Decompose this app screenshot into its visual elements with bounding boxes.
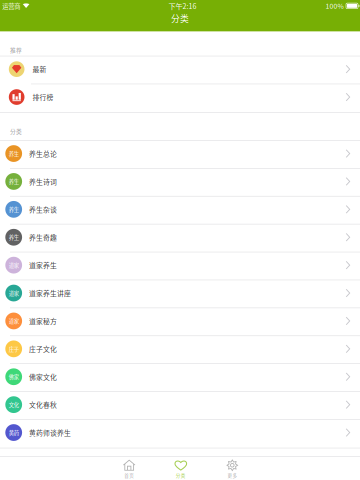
staticText: 黄药师谈养生 (29, 428, 71, 437)
staticText: 分类 (176, 472, 186, 479)
button[interactable]: 道家 (0, 280, 360, 308)
staticText: 下午2:16 (168, 1, 196, 11)
staticText: 养生杂谈 (29, 204, 57, 214)
staticText: 首页 (124, 472, 134, 479)
staticText: 养生 (9, 233, 19, 241)
button[interactable]: 养生 (0, 224, 360, 252)
button[interactable]: 首页 (103, 457, 155, 480)
staticText: 黄药 (9, 429, 19, 436)
button[interactable]: 养生 (0, 197, 360, 224)
staticText: 排行榜 (32, 92, 53, 102)
staticText: 道家 (9, 261, 19, 269)
button[interactable]: 文化 (0, 392, 360, 420)
staticText: 道家 (9, 317, 19, 325)
staticText: 庄子 (9, 345, 19, 353)
staticText: 养生总论 (29, 149, 57, 158)
button[interactable]: 分类 (155, 457, 207, 480)
staticText: 100% (325, 1, 343, 11)
staticText: 更多 (227, 472, 237, 479)
button[interactable]: 庄子 (0, 336, 360, 364)
button[interactable]: 排行榜 (0, 84, 360, 112)
button[interactable]: 更多 (207, 457, 258, 480)
staticText: 道家养生 (29, 260, 57, 270)
staticText: 运营商 (2, 1, 20, 10)
staticText: 推荐 (10, 46, 22, 54)
button[interactable]: 最新 (0, 56, 360, 84)
staticText: 道家养生讲座 (29, 288, 71, 298)
button[interactable]: 佛家 (0, 364, 360, 392)
button[interactable]: 养生 (0, 169, 360, 197)
staticText: 道家 (9, 289, 19, 297)
staticText: 分类 (171, 12, 189, 24)
button[interactable]: 黄药 (0, 420, 360, 448)
staticText: 最新 (32, 64, 46, 74)
staticText: 养生奇趣 (29, 232, 57, 242)
staticText: 养生诗词 (29, 176, 57, 186)
staticText: 庄子文化 (29, 344, 57, 354)
staticText: 养生 (9, 205, 19, 213)
staticText: 养生 (9, 178, 19, 185)
staticText: 佛家 (9, 373, 19, 381)
button[interactable]: 道家 (0, 252, 360, 280)
staticText: 文化春秋 (29, 400, 57, 409)
staticText: 养生 (9, 150, 19, 157)
staticText: 文化 (9, 401, 19, 408)
staticText: 分类 (10, 127, 22, 135)
staticText: 佛家文化 (29, 372, 57, 382)
staticText: 道家秘方 (29, 316, 57, 326)
button[interactable]: 养生 (0, 141, 360, 169)
button[interactable]: 道家 (0, 308, 360, 336)
